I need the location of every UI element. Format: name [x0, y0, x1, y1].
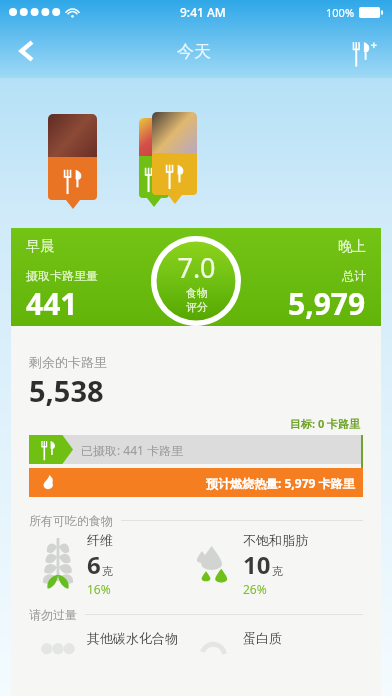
button[interactable]: 早晨 [11, 228, 381, 326]
staticText: 早晨 [26, 238, 54, 256]
staticText: 26% [243, 581, 267, 597]
staticText: 5,538 [29, 371, 104, 410]
staticText: 今天 [177, 41, 211, 62]
staticText: 晚上 [338, 238, 366, 256]
staticText: 16% [87, 581, 111, 597]
button[interactable]: Food score 7.0 [151, 236, 241, 326]
staticText: 7.0 [177, 249, 216, 286]
button[interactable] [48, 114, 97, 209]
button[interactable]: 不饱和脂肪 [191, 532, 371, 597]
staticText: 所有可吃的食物 [29, 513, 113, 528]
staticText: 100% [326, 5, 355, 20]
staticText: 纤维 [87, 532, 113, 548]
button[interactable]: 纤维 [35, 532, 191, 597]
staticText: 请勿过量 [29, 607, 77, 622]
staticText: 克 [272, 564, 283, 578]
staticText: 食物 [186, 286, 208, 300]
staticText: 5,979 [288, 283, 366, 324]
staticText: 其他碳水化合物 [87, 630, 178, 646]
staticText: 已摄取: 441 卡路里 [81, 442, 184, 458]
staticText: 9:41 AM [180, 4, 226, 20]
button[interactable]: Back [0, 24, 52, 78]
button[interactable] [139, 118, 169, 207]
staticText: 10 [243, 548, 271, 581]
staticText: 预计燃烧热量: 5,979 卡路里 [206, 475, 355, 491]
staticText: 评分 [186, 300, 208, 314]
staticText: 克 [102, 564, 113, 578]
staticText: 441 [26, 283, 78, 324]
staticText: 蛋白质 [243, 630, 282, 646]
staticText: 6 [87, 548, 101, 581]
button[interactable] [152, 112, 197, 204]
staticText: 不饱和脂肪 [243, 532, 308, 548]
button[interactable]: Add food [336, 24, 392, 78]
staticText: 剩余的卡路里 [29, 354, 107, 370]
staticText: 摄取卡路里量 [26, 268, 98, 283]
staticText: 目标: 0 卡路里 [290, 416, 361, 431]
staticText: 总计 [342, 268, 366, 283]
